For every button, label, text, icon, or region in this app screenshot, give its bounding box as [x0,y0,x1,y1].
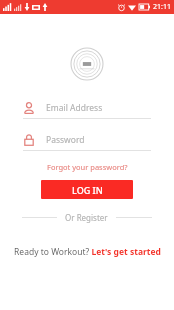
staticText: 21:11 [153,2,171,12]
button[interactable]: Ready to Workout? Let's get started [10,244,165,260]
staticText: Forgot your password? [47,162,128,172]
button[interactable]: Forgot your password? [41,160,134,174]
button[interactable]: Password [23,129,151,151]
button[interactable]: Email Address [23,97,151,119]
staticText: Ready to Workout? Let's get started [14,246,161,258]
staticText: Or Register [65,212,108,223]
staticText: Email Address [46,102,103,114]
button[interactable]: LOG IN [41,180,133,199]
button[interactable]: Or Register [57,210,116,225]
staticText: Password [46,134,85,146]
staticText: LOG IN [72,184,103,196]
